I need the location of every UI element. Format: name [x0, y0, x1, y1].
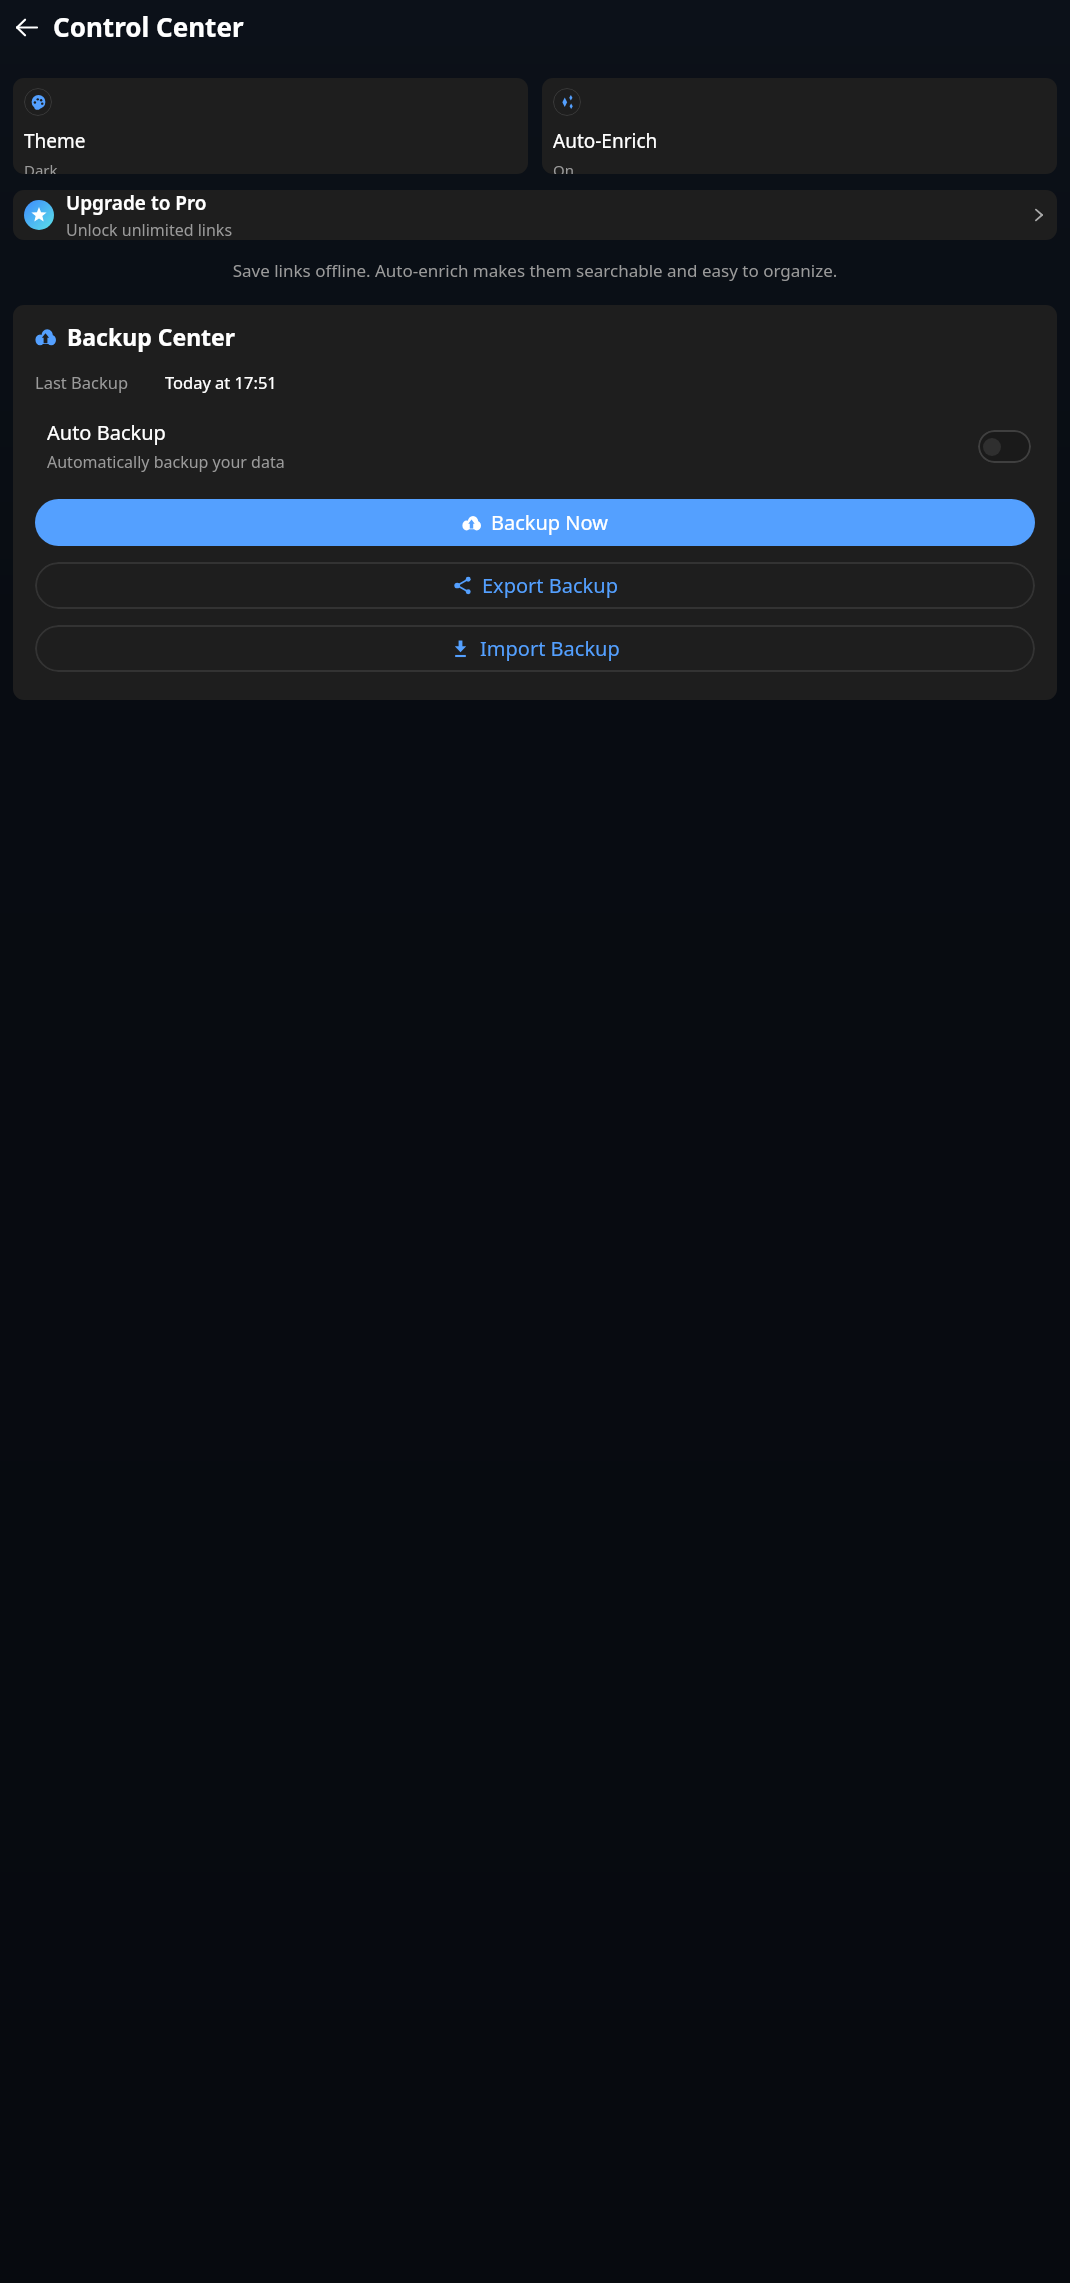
other: Auto Backup toggle	[978, 430, 1031, 463]
staticText: Backup Now	[491, 509, 608, 536]
button[interactable]: Auto-Enrich	[542, 78, 1057, 174]
staticText: Export Backup	[482, 572, 618, 599]
staticText: Last Backup	[35, 371, 129, 393]
button[interactable]: Back	[6, 7, 46, 47]
staticText: Import Backup	[480, 635, 620, 662]
button[interactable]: Export Backup	[35, 562, 1035, 609]
staticText: Control Center	[53, 9, 244, 44]
staticText: On	[553, 160, 574, 174]
staticText: Dark	[24, 160, 58, 174]
staticText: Auto-Enrich	[553, 128, 658, 154]
button[interactable]: Theme	[13, 78, 528, 174]
staticText: Save links offline. Auto-enrich makes th…	[35, 259, 1035, 282]
button[interactable]: Upgrade to Pro	[13, 190, 1057, 240]
staticText: Upgrade to Pro	[66, 190, 207, 216]
staticText: Backup Center	[67, 321, 236, 352]
button[interactable]: Auto Backup	[25, 415, 1045, 477]
staticText: Unlock unlimited links	[66, 219, 233, 240]
staticText: Today at 17:51	[165, 371, 277, 393]
button[interactable]: Import Backup	[35, 625, 1035, 672]
staticText: Auto Backup	[47, 419, 166, 446]
staticText: Automatically backup your data	[47, 451, 285, 473]
staticText: Theme	[24, 128, 86, 154]
button[interactable]: Backup Now	[35, 499, 1035, 546]
